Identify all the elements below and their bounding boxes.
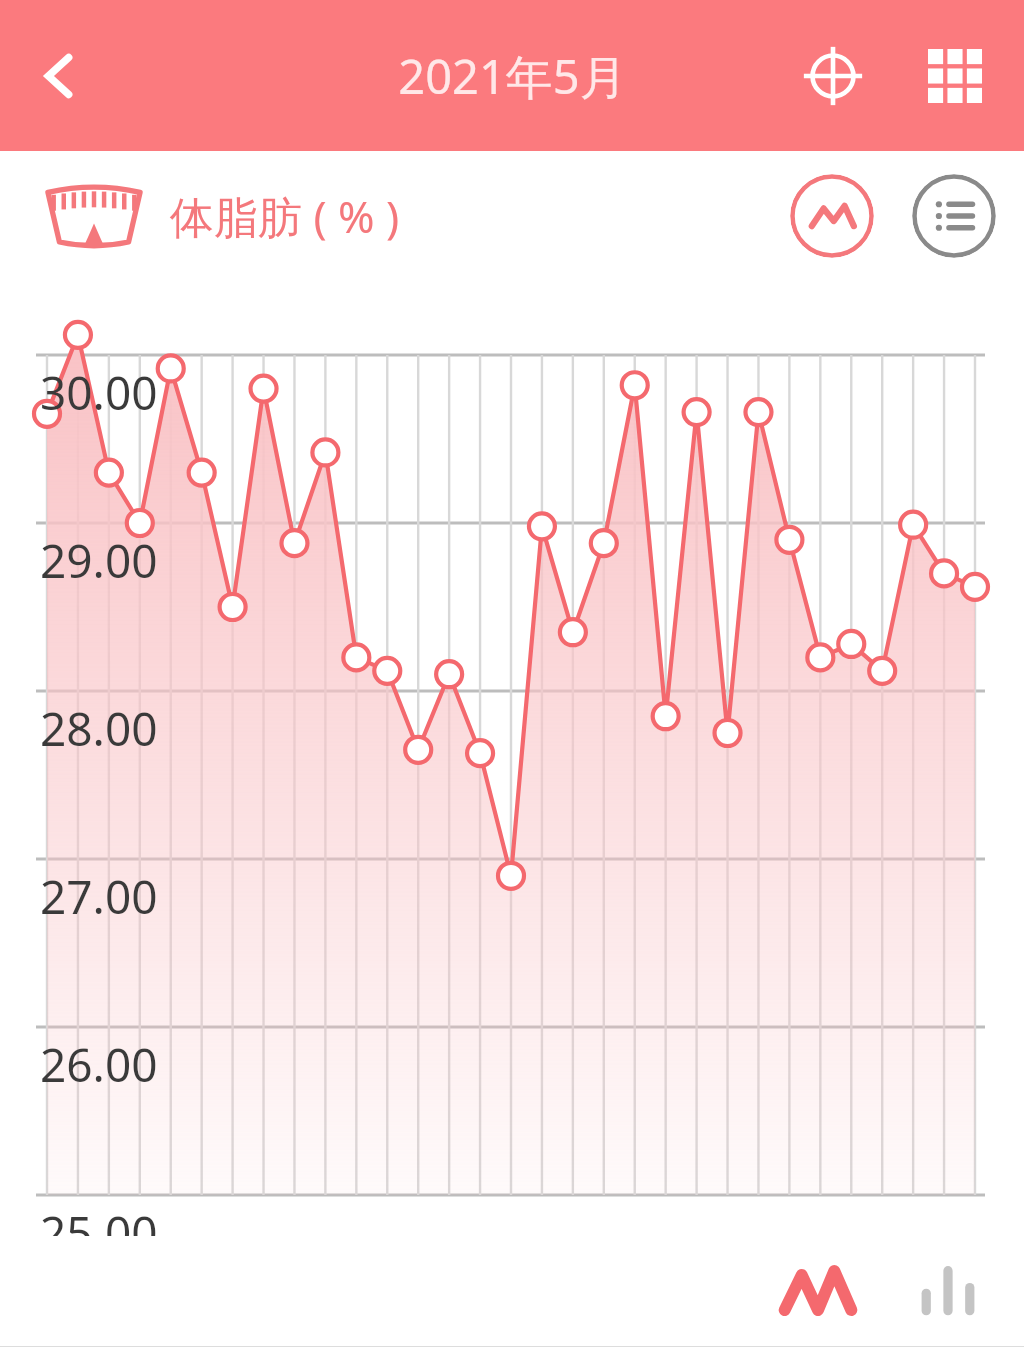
button[interactable]: Line chart bbox=[772, 1245, 864, 1337]
staticText: 30.00 bbox=[40, 361, 158, 424]
staticText: 2021年5月 bbox=[398, 44, 627, 108]
button[interactable]: Back bbox=[20, 37, 98, 115]
staticText: 体脂肪 ( % ) bbox=[170, 186, 400, 246]
button[interactable]: List view bbox=[912, 174, 996, 258]
button[interactable]: Target bbox=[790, 33, 876, 119]
button[interactable]: Chart view bbox=[790, 174, 874, 258]
staticText: 27.00 bbox=[40, 865, 158, 928]
staticText: 28.00 bbox=[40, 697, 158, 760]
staticText: 26.00 bbox=[40, 1033, 158, 1096]
staticText: 29.00 bbox=[40, 529, 158, 592]
button[interactable]: Bar chart bbox=[902, 1245, 994, 1337]
staticText: 25.00 bbox=[40, 1201, 158, 1236]
button[interactable]: Apps bbox=[912, 33, 998, 119]
